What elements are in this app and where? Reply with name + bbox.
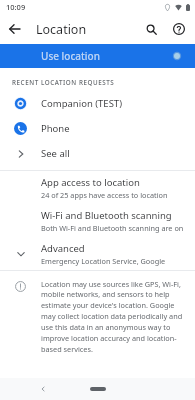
staticText: Both Wi-Fi and Bluetooth scanning are on (41, 223, 184, 233)
staticText: App access to location (41, 176, 140, 189)
button[interactable]: Phone (0, 116, 195, 141)
staticText: Companion (TEST) (41, 97, 122, 110)
staticText: RECENT LOCATION REQUESTS (12, 78, 115, 87)
button[interactable]: Search (137, 15, 165, 43)
staticText: Location may use sources like GPS, Wi-Fi… (41, 279, 187, 354)
button[interactable]: Help (165, 15, 193, 43)
button[interactable]: Wi-Fi and Bluetooth scanning (0, 204, 195, 237)
staticText: 24 of 25 apps have access to location (41, 190, 168, 200)
staticText: Use location (41, 49, 100, 63)
button[interactable]: Home (81, 382, 115, 396)
button[interactable]: Back (0, 14, 30, 44)
button[interactable]: Back (36, 382, 50, 396)
button[interactable]: Advanced (0, 237, 195, 270)
staticText: Wi-Fi and Bluetooth scanning (41, 209, 172, 222)
button[interactable]: See all (0, 141, 195, 166)
staticText: Phone (41, 122, 70, 135)
staticText: 10:09 (6, 2, 26, 12)
staticText: Location (36, 21, 87, 38)
staticText: Advanced (41, 242, 85, 255)
staticText: Emergency Location Service, Google Locat… (41, 256, 187, 266)
button[interactable]: Companion (TEST) (0, 91, 195, 116)
staticText: See all (41, 147, 70, 160)
button[interactable]: App access to location (0, 171, 195, 204)
button[interactable]: Use location (0, 44, 195, 68)
